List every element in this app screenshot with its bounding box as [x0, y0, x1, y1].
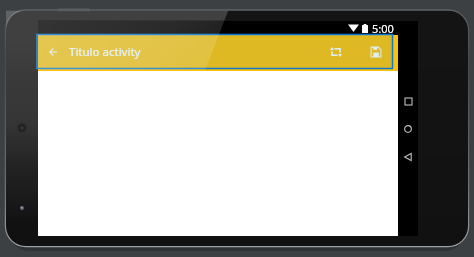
button[interactable]: Home: [398, 119, 418, 139]
button[interactable]: Sync: [325, 41, 347, 63]
button[interactable]: Recent apps: [398, 91, 418, 111]
button[interactable]: Back: [398, 147, 418, 167]
button[interactable]: Navigate up: [44, 43, 62, 61]
button[interactable]: Save: [365, 41, 387, 63]
staticText: Titulo activity: [69, 44, 141, 60]
staticText: 5:00: [372, 21, 394, 35]
